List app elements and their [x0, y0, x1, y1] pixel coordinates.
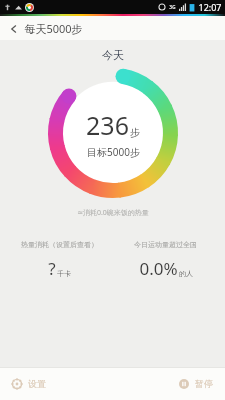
staticText: 每天5000步 [24, 21, 83, 36]
staticText: 今天 [102, 48, 124, 62]
staticText: ? [48, 257, 56, 280]
staticText: 千卡 [57, 269, 71, 278]
staticText: 12:07 [198, 1, 222, 13]
staticText: 0.0% [139, 257, 178, 280]
button[interactable]: 暂停 [112, 367, 225, 400]
staticText: 步 [130, 126, 140, 139]
staticText: 今日运动量超过全国 [134, 240, 197, 249]
staticText: ≈消耗0.0碗米饭的热量 [77, 208, 149, 218]
staticText: 暂停 [195, 378, 213, 389]
button[interactable]: 设置 [0, 367, 112, 400]
staticText: 设置 [28, 378, 46, 389]
button[interactable]: Back [6, 18, 87, 39]
button[interactable]: 今日运动量超过全国 [112, 238, 219, 282]
button[interactable]: 热量消耗（设置后查看） [6, 238, 112, 282]
staticText: 目标5000步 [87, 145, 140, 159]
staticText: 236 [86, 108, 129, 142]
staticText: 的人 [179, 269, 193, 278]
staticText: 3G [169, 4, 176, 11]
staticText: 热量消耗（设置后查看） [21, 240, 98, 249]
